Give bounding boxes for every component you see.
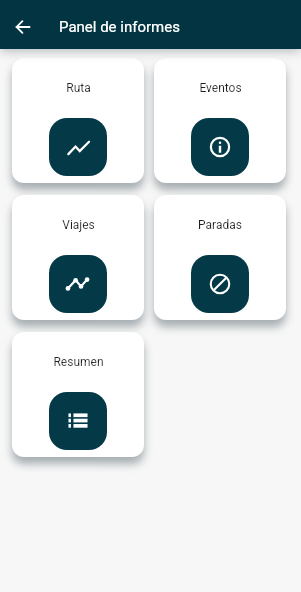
staticText: Viajes [62, 218, 95, 232]
staticText: Paradas [198, 218, 242, 232]
staticText: Eventos [199, 81, 242, 95]
staticText: Ruta [66, 81, 91, 95]
button[interactable]: Paradas [154, 195, 286, 320]
button[interactable]: Eventos [154, 58, 286, 183]
button[interactable]: Viajes [12, 195, 144, 320]
button[interactable]: Ruta [12, 58, 144, 183]
button[interactable]: Resumen [12, 332, 144, 457]
button[interactable]: Back [7, 9, 39, 41]
staticText: Panel de informes [59, 18, 180, 36]
staticText: Resumen [53, 355, 104, 369]
